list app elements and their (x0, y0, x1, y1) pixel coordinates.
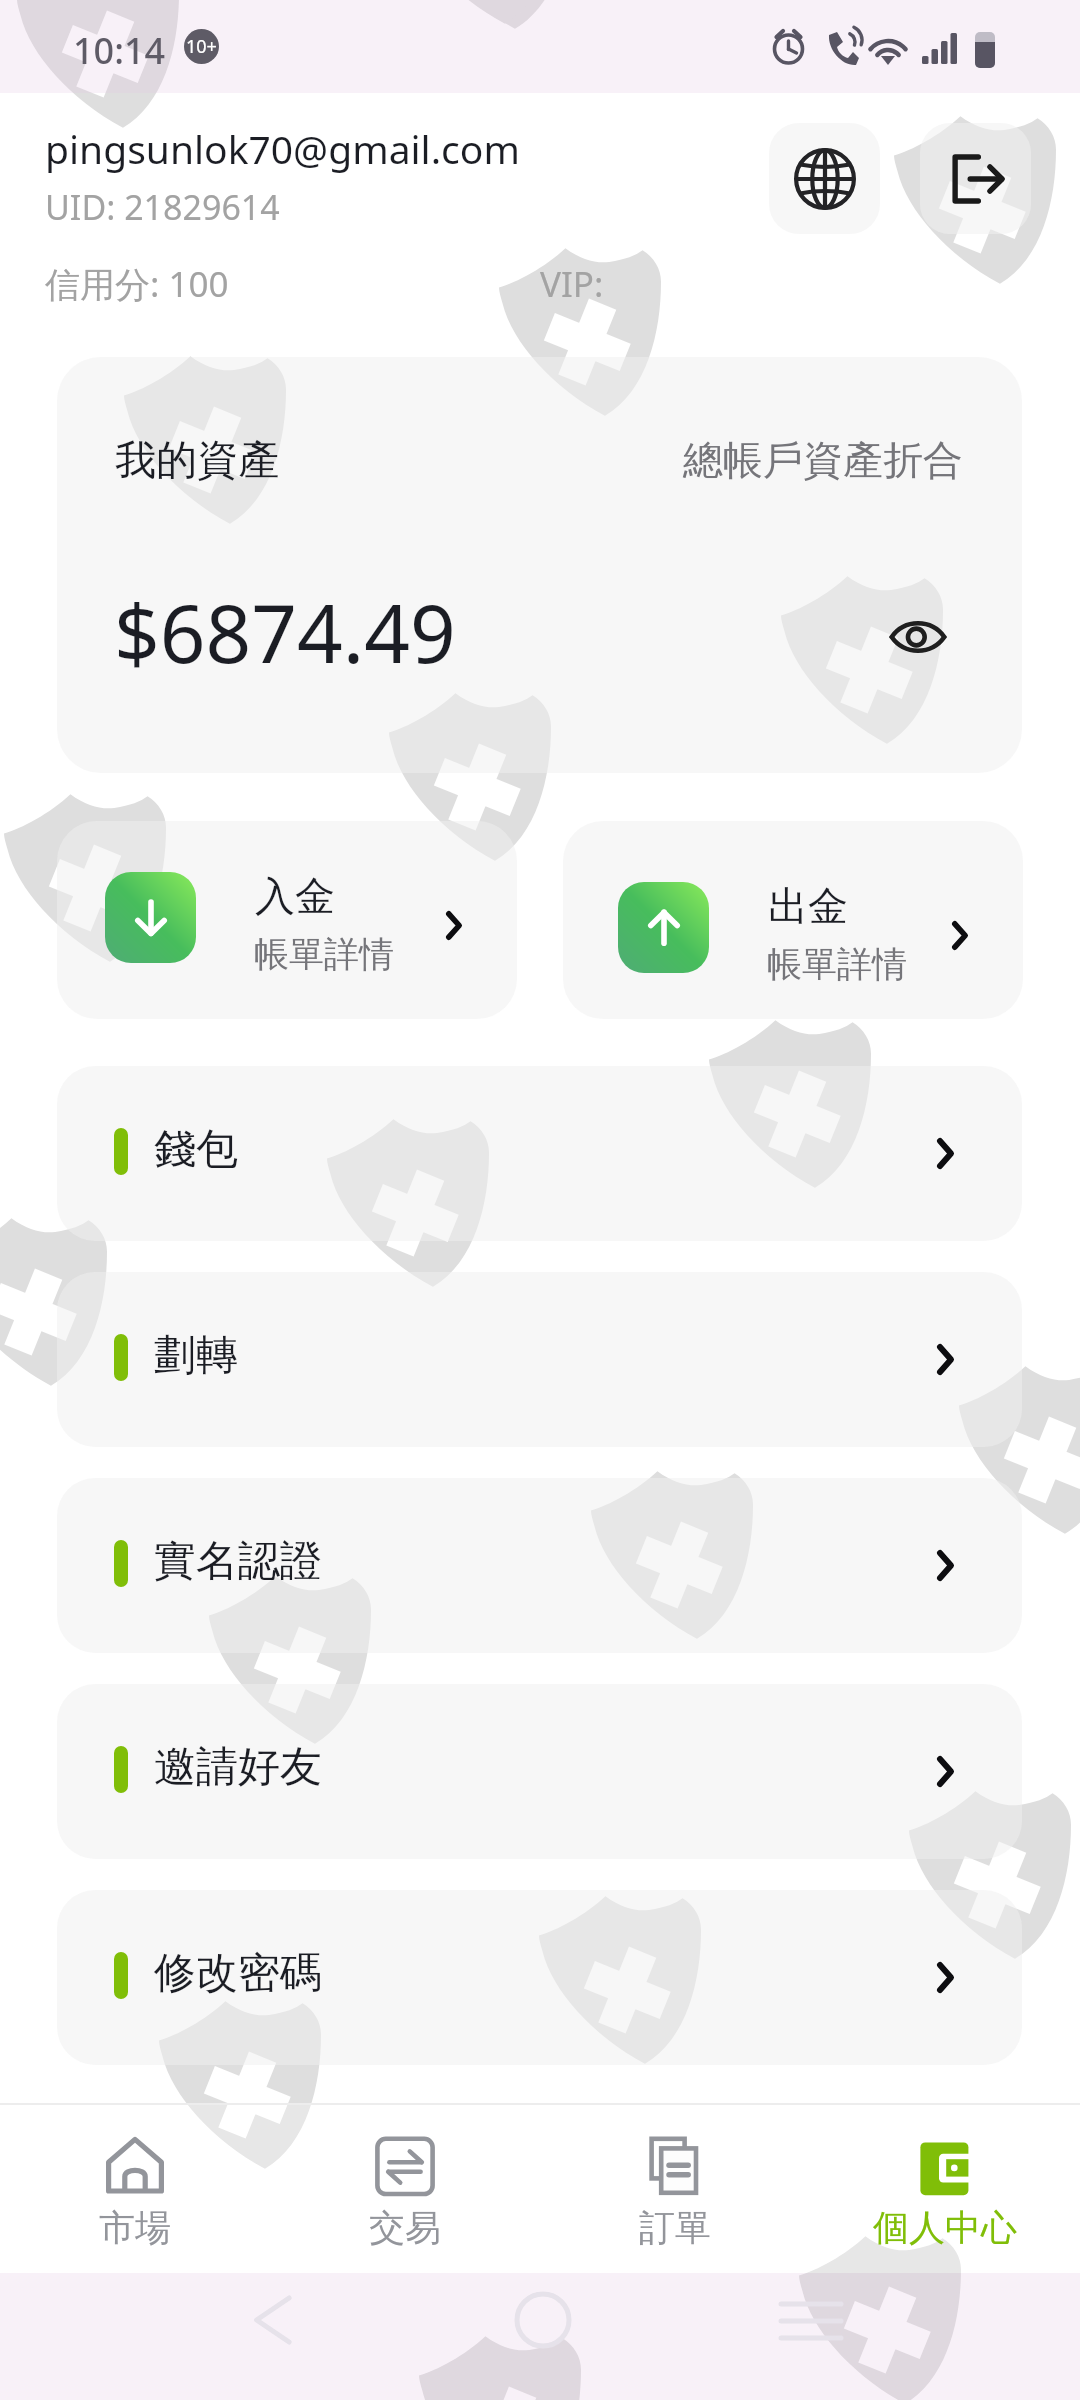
button[interactable]: Home (514, 2291, 572, 2349)
staticText: 入金 (255, 871, 335, 921)
button[interactable]: 訂單 (540, 2104, 810, 2273)
staticText: 交易 (369, 2205, 441, 2250)
button[interactable]: 劃轉 (57, 1272, 1022, 1447)
button[interactable]: 入金 (57, 821, 517, 1019)
staticText: 我的資產 (115, 435, 279, 487)
staticText: 市場 (99, 2205, 171, 2250)
button[interactable]: Recent apps (781, 2291, 839, 2349)
staticText: VIP: (540, 260, 604, 308)
staticText: 邀請好友 (154, 1741, 322, 1794)
staticText: pingsunlok70@gmail.com (45, 122, 520, 175)
button[interactable]: 市場 (0, 2104, 270, 2273)
staticText: 修改密碼 (154, 1947, 322, 2000)
staticText: 信用分: 100 (45, 260, 229, 308)
staticText: UID: 21829614 (45, 184, 280, 230)
button[interactable]: 實名認證 (57, 1478, 1022, 1653)
staticText: 錢包 (154, 1123, 238, 1176)
button[interactable]: 交易 (270, 2104, 540, 2273)
button[interactable]: Language (769, 123, 880, 234)
button[interactable]: 錢包 (57, 1066, 1022, 1241)
button[interactable]: 邀請好友 (57, 1684, 1022, 1859)
button[interactable]: 個人中心 (810, 2104, 1080, 2273)
staticText: 個人中心 (873, 2205, 1017, 2250)
button[interactable]: 出金 (563, 821, 1023, 1019)
staticText: 出金 (768, 881, 848, 931)
staticText: 總帳戶資產折合 (683, 435, 963, 485)
staticText: 10:14 (73, 26, 166, 75)
staticText: 帳單詳情 (254, 932, 394, 976)
staticText: 帳單詳情 (767, 942, 907, 986)
staticText: 劃轉 (154, 1329, 238, 1382)
button[interactable]: Logout (920, 123, 1031, 234)
button[interactable]: 修改密碼 (57, 1890, 1022, 2065)
button[interactable]: Toggle balance visibility (879, 606, 957, 668)
staticText: $6874.49 (114, 577, 456, 686)
staticText: 10+ (186, 34, 217, 59)
button[interactable]: Back (245, 2291, 303, 2349)
staticText: 實名認證 (154, 1535, 322, 1588)
button[interactable]: 我的資產 (57, 357, 1022, 773)
staticText: 訂單 (639, 2205, 711, 2250)
